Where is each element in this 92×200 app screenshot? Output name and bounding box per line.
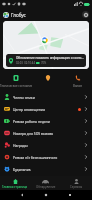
button[interactable]: Будильник xyxy=(4,163,88,175)
staticText: Номера для SOS вызова xyxy=(13,131,54,136)
staticText: Сервисы xyxy=(70,185,83,189)
staticText: Центр оповещения xyxy=(13,107,45,112)
other: Back xyxy=(20,193,24,197)
staticText: Вызов xyxy=(73,84,82,88)
button[interactable]: Сервисы xyxy=(61,177,92,189)
staticText: Обнаружение xyxy=(36,185,56,189)
button[interactable]: Обновление показать информацию о состоян… xyxy=(6,54,86,67)
button[interactable]: Режим работы недели xyxy=(4,115,88,127)
staticText: Главная страница xyxy=(2,185,28,189)
button[interactable]: Главная страница xyxy=(0,177,30,189)
button[interactable]: Техническое состояние xyxy=(0,69,32,88)
button[interactable]: Add device xyxy=(82,11,89,18)
button[interactable]: Члены семьи xyxy=(4,91,88,103)
button[interactable] xyxy=(32,69,63,84)
button[interactable]: Награды xyxy=(4,139,88,151)
staticText: Глобус xyxy=(11,12,26,18)
staticText: Обновление показать информацию о состоян… xyxy=(16,56,84,60)
staticText: Будильник xyxy=(13,167,31,172)
button[interactable]: Номера для SOS вызова xyxy=(4,127,88,139)
staticText: Члены семьи xyxy=(13,95,35,100)
button[interactable]: Вызов xyxy=(63,69,92,88)
staticText: Режим работы недели xyxy=(13,119,50,124)
other: Home xyxy=(44,193,48,197)
staticText: Награды xyxy=(13,143,28,148)
staticText: Режим л/з беспошлинного xyxy=(13,155,58,160)
staticText: Техническое состояние xyxy=(0,84,32,88)
button[interactable]: Центр оповещения xyxy=(4,103,88,115)
staticText: 70% xyxy=(41,61,47,65)
staticText: 02:03 02:10:44 xyxy=(16,61,36,65)
button[interactable]: Обнаружение xyxy=(30,177,61,189)
button[interactable]: Режим л/з беспошлинного xyxy=(4,151,88,163)
other: Recents xyxy=(68,193,72,197)
button[interactable]: Обновление показать информацию о состоян… xyxy=(3,21,89,69)
